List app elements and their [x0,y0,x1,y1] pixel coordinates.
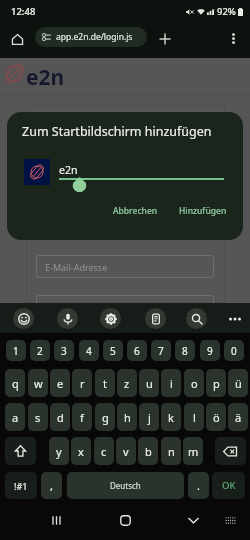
staticText: e2n [26,63,65,92]
staticText: 6 [134,344,140,358]
button[interactable]: 4 [79,340,99,361]
button[interactable]: Switch keyboard [216,506,244,534]
staticText: Hinzufügen [179,205,227,217]
staticText: s [35,410,41,425]
button[interactable]: ä [228,403,248,431]
staticText: OK [222,479,236,492]
button[interactable]: Clipboard [145,308,166,329]
button[interactable]: w [28,369,48,397]
staticText: r [80,376,85,391]
button[interactable]: g [95,403,115,431]
staticText: 7 [158,344,164,358]
staticText: q [12,376,19,391]
button[interactable]: 3 [54,340,74,361]
button[interactable]: More options [223,28,244,49]
button[interactable]: p [206,369,226,397]
staticText: a [12,410,19,425]
button[interactable]: Deutsch [67,472,184,499]
button[interactable]: Recents [42,506,70,534]
staticText: n [168,444,175,459]
staticText: 3 [61,344,67,358]
button[interactable]: m [183,437,203,465]
staticText: 1 [13,344,19,358]
button[interactable]: n [161,437,181,465]
button[interactable]: Emoji [13,308,34,329]
staticText: k [168,410,174,425]
staticText: ä [235,410,242,425]
button[interactable]: c [94,437,114,465]
button[interactable]: r [72,369,92,397]
staticText: 4 [86,344,92,358]
button[interactable]: a [5,403,25,431]
button[interactable]: s [28,403,48,431]
button[interactable]: 1 [6,340,26,361]
staticText: d [57,410,64,425]
staticText: E-Mail-Adresse [45,261,108,273]
button[interactable]: Hide keyboard [179,506,207,534]
staticText: app.e2n.de/login.js [56,31,133,43]
button[interactable]: q [5,369,25,397]
staticText: 2 [37,344,43,358]
button[interactable]: i [161,369,181,397]
button[interactable]: , [41,472,62,499]
button[interactable]: t [95,369,115,397]
staticText: e [57,376,64,391]
button[interactable]: v [116,437,136,465]
staticText: b [145,444,152,459]
button[interactable]: app.e2n.de/login.js [35,27,147,47]
button[interactable]: o [184,369,204,397]
button[interactable]: 9 [200,340,220,361]
staticText: . [197,478,200,493]
staticText: e2n [59,163,78,177]
staticText: y [56,444,62,459]
button[interactable]: 7 [151,340,171,361]
staticText: l [193,410,196,425]
staticText: m [188,444,199,459]
button[interactable]: h [117,403,137,431]
button[interactable]: ö [206,403,226,431]
button[interactable]: f [72,403,92,431]
button[interactable]: b [138,437,158,465]
button[interactable]: ü [228,369,248,397]
button[interactable]: 8 [175,340,195,361]
button[interactable]: Home [111,506,139,534]
staticText: t [103,376,107,391]
staticText: Deutsch [110,480,141,491]
staticText: Abbrechen [113,205,158,217]
button[interactable]: Voice input [57,308,78,329]
button[interactable]: Hinzufügen [172,200,234,222]
button[interactable]: x [71,437,91,465]
button[interactable]: New tab [154,28,175,49]
button[interactable]: Abbrechen [106,200,165,222]
button[interactable]: OK [212,472,245,499]
button[interactable]: 5 [103,340,123,361]
button[interactable]: backspace [215,437,246,465]
staticText: 9 [207,344,213,358]
button[interactable]: Home [6,28,28,50]
staticText: Zum Startbildschirm hinzufügen [22,123,212,140]
button[interactable]: k [161,403,181,431]
staticText: x [78,444,84,459]
button[interactable]: More keyboard options [224,308,245,329]
button[interactable]: shift [5,437,36,465]
staticText: h [124,410,131,425]
button[interactable]: y [49,437,69,465]
button[interactable]: !#1 [5,472,37,499]
button[interactable]: j [139,403,159,431]
button[interactable]: l [184,403,204,431]
staticText: w [34,376,43,391]
staticText: 0 [231,344,237,358]
button[interactable]: z [117,369,137,397]
button[interactable]: Keyboard settings [100,308,121,329]
staticText: ö [213,410,220,425]
button[interactable]: 6 [127,340,147,361]
button[interactable]: 0 [224,340,244,361]
button[interactable]: e [50,369,70,397]
button[interactable]: d [50,403,70,431]
button[interactable]: Search [186,308,207,329]
staticText: g [102,410,109,425]
staticText: f [80,410,84,425]
button[interactable]: u [139,369,159,397]
button[interactable]: 2 [30,340,50,361]
button[interactable]: . [188,472,209,499]
